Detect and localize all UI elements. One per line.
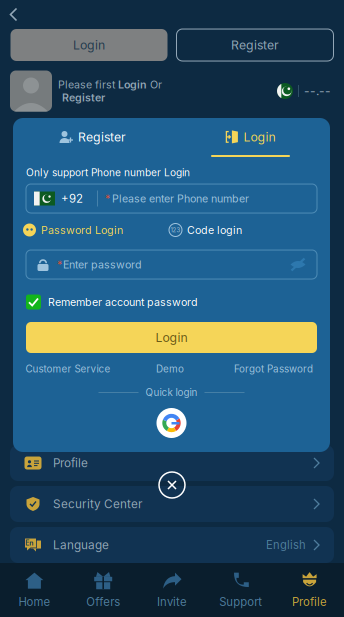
staticText: +92 (61, 192, 83, 205)
button[interactable]: Home (0, 563, 69, 617)
button[interactable]: Back (0, 3, 29, 25)
staticText: * (105, 192, 110, 205)
staticText: Register (62, 91, 105, 104)
button[interactable]: Offers (69, 563, 138, 617)
button[interactable]: 123 (169, 223, 242, 237)
button[interactable]: Close (155, 468, 189, 502)
staticText: 123 (170, 226, 180, 234)
staticText: Password Login (41, 223, 123, 236)
staticText: Customer Service (25, 363, 110, 375)
button[interactable]: Profile (275, 563, 344, 617)
button[interactable]: Support (206, 563, 275, 617)
button[interactable]: Show password (288, 254, 308, 274)
staticText: Forgot Password (234, 363, 313, 375)
staticText: English (266, 538, 306, 552)
button[interactable]: Demo (120, 363, 220, 375)
button[interactable]: Invite (138, 563, 206, 617)
staticText: Profile (53, 456, 88, 470)
staticText: Or (147, 78, 162, 91)
staticText: Invite (157, 595, 187, 609)
staticText: Profile (292, 595, 327, 609)
staticText: * (57, 258, 62, 271)
staticText: Code login (187, 223, 242, 236)
staticText: Security Center (53, 497, 142, 511)
button[interactable]: Login (13, 322, 330, 353)
button[interactable]: Security Center (0, 486, 344, 522)
staticText: Login (73, 38, 105, 52)
button[interactable]: Remember account password (13, 294, 330, 310)
staticText: En (25, 539, 33, 547)
button[interactable]: En (0, 527, 344, 563)
staticText: Register (78, 130, 126, 144)
staticText: Only support Phone number Login (26, 166, 190, 179)
button[interactable]: Login (171, 118, 329, 158)
button[interactable]: Login (10, 29, 167, 61)
staticText: Language (53, 538, 109, 552)
staticText: Login (155, 330, 187, 345)
button[interactable]: Register (176, 29, 333, 61)
staticText: Login (243, 130, 275, 144)
staticText: Offers (86, 595, 120, 609)
staticText: Support (219, 595, 262, 609)
staticText: Quick login (145, 386, 197, 398)
staticText: Demo (156, 363, 184, 375)
button[interactable]: Sign in with Google (156, 408, 186, 438)
staticText: Please first (58, 78, 118, 91)
staticText: --.-- (304, 84, 331, 98)
button[interactable]: Password Login (23, 223, 123, 237)
button[interactable]: Profile (0, 445, 344, 481)
button[interactable]: Customer Service (16, 363, 120, 375)
button[interactable]: Register (13, 118, 171, 158)
button[interactable]: Forgot Password (220, 363, 327, 375)
staticText: Login (118, 78, 147, 91)
staticText: Register (231, 38, 279, 52)
staticText: Home (18, 595, 50, 609)
staticText: Please enter Phone number (112, 192, 249, 205)
staticText: Remember account password (48, 295, 198, 308)
staticText: Enter password (63, 258, 142, 271)
